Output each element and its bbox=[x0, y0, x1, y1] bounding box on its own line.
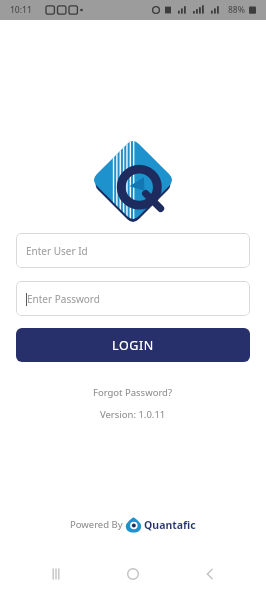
button[interactable]: LOGIN bbox=[16, 328, 250, 362]
staticText: Version: 1.0.11 bbox=[100, 408, 166, 421]
button[interactable]: Enter User Id bbox=[16, 233, 250, 268]
button[interactable]: Recents bbox=[34, 555, 78, 592]
button[interactable]: Back bbox=[189, 555, 233, 592]
button[interactable]: Enter Password bbox=[16, 281, 250, 316]
staticText: Enter Password bbox=[27, 292, 100, 306]
staticText: Enter User Id bbox=[26, 244, 88, 258]
staticText: Powered By bbox=[70, 518, 123, 531]
button[interactable]: Forgot Password? bbox=[85, 384, 181, 401]
staticText: Quantafic bbox=[144, 518, 196, 532]
staticText: 10:11 bbox=[10, 4, 32, 16]
other: Quantafic logo bbox=[125, 516, 142, 533]
staticText: LOGIN bbox=[112, 337, 154, 354]
staticText: 88% bbox=[228, 4, 245, 16]
button[interactable]: Home bbox=[111, 555, 155, 592]
